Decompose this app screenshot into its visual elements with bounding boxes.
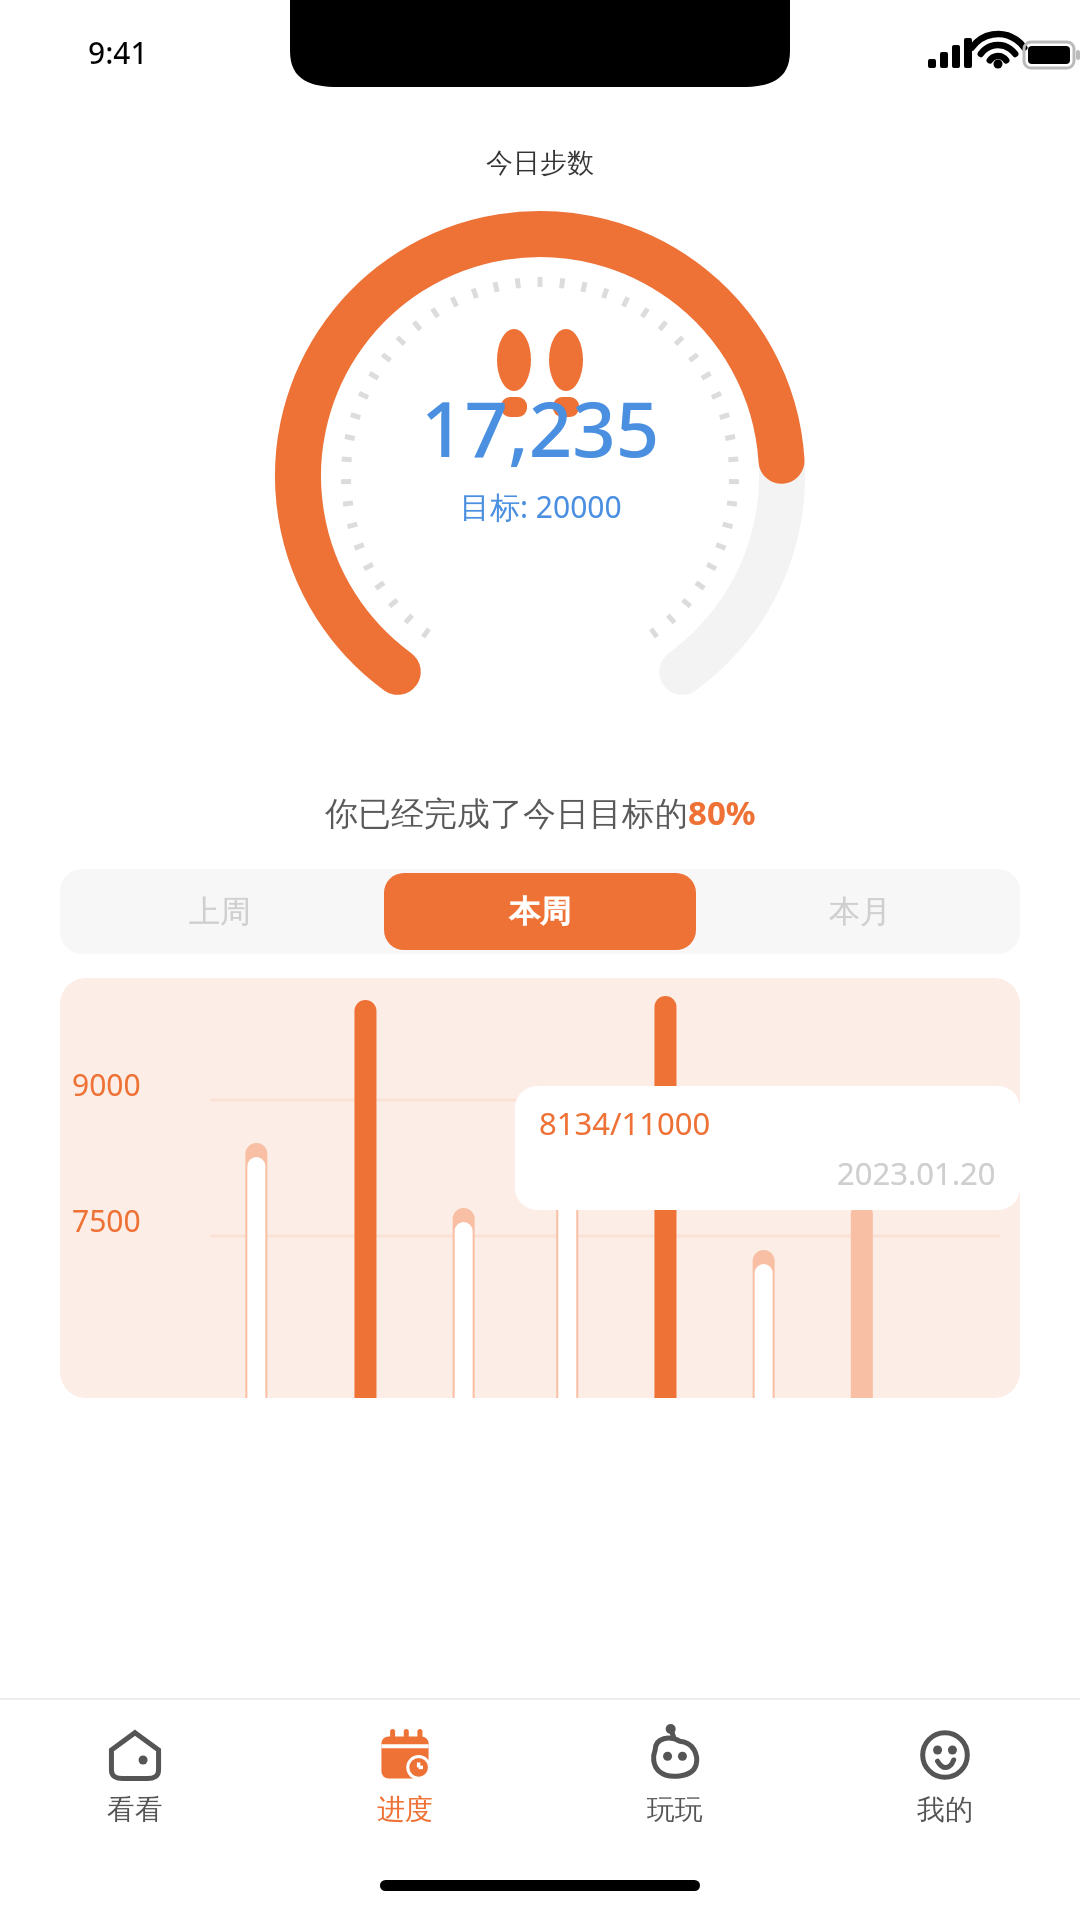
staticText: 看看 xyxy=(107,1792,163,1827)
button[interactable]: 上周 xyxy=(60,869,380,954)
button[interactable]: 本周 xyxy=(384,873,696,950)
button[interactable]: 玩玩 xyxy=(540,1700,810,1850)
button[interactable]: 本月 xyxy=(700,869,1020,954)
staticText: 17,235 xyxy=(421,376,660,480)
staticText: 8134/11000 xyxy=(539,1102,711,1144)
staticText: 7500 xyxy=(72,1200,141,1241)
staticText: 玩玩 xyxy=(647,1792,703,1827)
staticText: 目标: 20000 xyxy=(460,486,622,527)
button[interactable]: 我的 xyxy=(810,1700,1080,1850)
staticText: 9000 xyxy=(72,1064,141,1105)
staticText: 本月 xyxy=(829,892,891,931)
staticText: 2023.01.20 xyxy=(837,1152,996,1194)
button[interactable]: 看看 xyxy=(0,1700,270,1850)
staticText: 进度 xyxy=(377,1792,433,1827)
staticText: 我的 xyxy=(917,1792,973,1827)
staticText: 你已经完成了今日目标的80% xyxy=(325,790,756,835)
staticText: 上周 xyxy=(189,892,251,931)
button[interactable]: 进度 xyxy=(270,1700,540,1850)
staticText: 本周 xyxy=(509,892,571,931)
staticText: 今日步数 xyxy=(486,146,594,180)
staticText: 9:41 xyxy=(88,32,148,73)
